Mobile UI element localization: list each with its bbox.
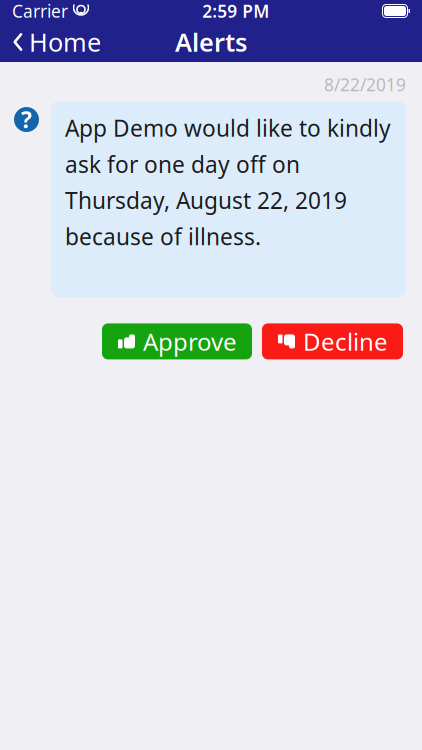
staticText: Home bbox=[29, 25, 101, 59]
button[interactable]: Home bbox=[0, 19, 101, 65]
staticText: Carrier bbox=[12, 0, 68, 22]
staticText: Approve bbox=[143, 325, 237, 357]
staticText: 8/22/2019 bbox=[324, 73, 406, 96]
staticText: App Demo would like to kindly ask for on… bbox=[65, 113, 391, 251]
button[interactable]: Approve bbox=[102, 323, 252, 359]
staticText: ? bbox=[21, 104, 32, 135]
staticText: Decline bbox=[303, 325, 388, 357]
staticText: 2:59 PM bbox=[202, 0, 269, 22]
staticText: Alerts bbox=[175, 25, 247, 59]
button[interactable]: Decline bbox=[262, 323, 403, 359]
